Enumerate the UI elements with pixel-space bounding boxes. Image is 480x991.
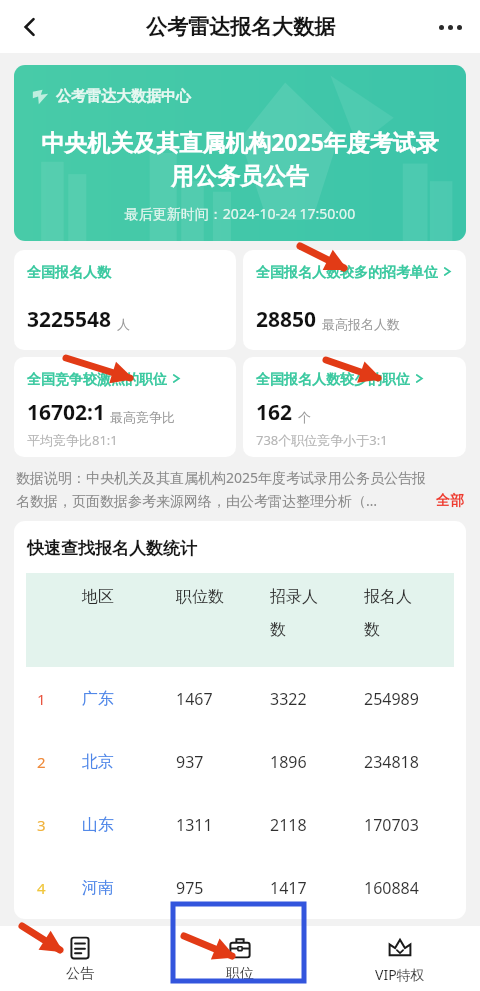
- staticText: 1: [37, 689, 46, 709]
- staticText: 全国报名人数较少的职位: [256, 371, 410, 389]
- staticText: 河南: [82, 878, 114, 898]
- staticText: 中央机关及其直属机构2025年度考试录用公务员公告: [30, 126, 450, 190]
- staticText: VIP特权: [375, 965, 425, 984]
- staticText: 1417: [270, 877, 307, 899]
- staticText: 公考雷达大数据中心: [56, 87, 191, 106]
- staticText: 1896: [270, 751, 307, 773]
- staticText: 招录人数: [270, 587, 318, 640]
- button[interactable]: 公考雷达大数据中心: [14, 65, 466, 241]
- staticText: 职位数: [176, 587, 224, 607]
- staticText: 全国报名人数: [27, 264, 111, 282]
- staticText: 广东: [82, 689, 114, 709]
- staticText: 937: [176, 751, 204, 773]
- staticText: 快速查找报名人数统计: [27, 538, 197, 559]
- staticText: 报名人数: [364, 587, 412, 640]
- button[interactable]: Back: [8, 5, 52, 49]
- staticText: 975: [176, 877, 204, 899]
- button[interactable]: 3: [14, 793, 466, 856]
- button[interactable]: 2: [14, 730, 466, 793]
- staticText: 738个职位竞争小于3:1: [256, 431, 388, 449]
- staticText: 2: [37, 752, 46, 772]
- staticText: 人: [117, 316, 130, 332]
- staticText: 最高报名人数: [322, 316, 400, 332]
- button[interactable]: 4: [14, 856, 466, 919]
- staticText: 162: [256, 398, 293, 427]
- button[interactable]: 全国报名人数较少的职位: [243, 357, 466, 457]
- staticText: 个: [298, 409, 311, 425]
- staticText: 160884: [364, 877, 419, 899]
- staticText: 公告: [66, 965, 94, 983]
- button[interactable]: 职位: [160, 926, 320, 991]
- staticText: 2118: [270, 814, 307, 836]
- staticText: 170703: [364, 814, 419, 836]
- staticText: 职位: [226, 965, 254, 983]
- staticText: 1467: [176, 688, 213, 710]
- button[interactable]: VIP特权: [320, 926, 480, 991]
- staticText: 234818: [364, 751, 419, 773]
- staticText: 4: [37, 878, 46, 898]
- staticText: 1311: [176, 814, 213, 836]
- button[interactable]: More options: [428, 5, 472, 49]
- staticText: 地区: [82, 587, 130, 607]
- button[interactable]: 全国竞争较激烈的职位: [14, 357, 236, 457]
- staticText: 16702:1: [27, 398, 105, 427]
- staticText: 3: [37, 815, 46, 835]
- button[interactable]: 全部: [436, 492, 464, 510]
- staticText: 公考雷达报名大数据: [146, 14, 335, 40]
- button[interactable]: 全国报名人数较多的招考单位: [243, 250, 466, 350]
- staticText: 全国报名人数较多的招考单位: [256, 264, 438, 282]
- staticText: 254989: [364, 688, 419, 710]
- button[interactable]: 公告: [0, 926, 160, 991]
- staticText: 3322: [270, 688, 307, 710]
- staticText: 北京: [82, 752, 114, 772]
- staticText: 3225548: [27, 305, 112, 334]
- staticText: 28850: [256, 305, 317, 334]
- staticText: 最高竞争比: [110, 409, 175, 425]
- staticText: 全国竞争较激烈的职位: [27, 371, 167, 389]
- staticText: 平均竞争比81:1: [27, 431, 118, 449]
- button[interactable]: 全国报名人数: [14, 250, 236, 350]
- button[interactable]: 1: [14, 667, 466, 730]
- staticText: 数据说明：中央机关及其直属机构2025年度考试录用公务员公告报名数据，页面数据参…: [16, 468, 436, 510]
- staticText: 山东: [82, 815, 114, 835]
- staticText: 最后更新时间：2024-10-24 17:50:00: [14, 204, 466, 223]
